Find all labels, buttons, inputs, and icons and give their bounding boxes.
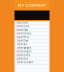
- staticText: Item nine: [16, 54, 30, 57]
- staticText: Item two: [16, 28, 28, 32]
- staticText: Item ten: [16, 57, 28, 60]
- staticText: Item five: [16, 39, 28, 42]
- staticText: Section: [16, 21, 28, 24]
- staticText: Item one: [16, 25, 29, 28]
- staticText: Item seven: [16, 46, 31, 50]
- staticText: Item three: [16, 32, 31, 35]
- staticText: Item six: [16, 43, 26, 46]
- button[interactable]: Item six: [14, 43, 49, 46]
- button[interactable]: Item four: [14, 36, 49, 39]
- button[interactable]: Item one: [14, 25, 49, 28]
- button[interactable]: Item eight: [14, 50, 49, 54]
- button[interactable]: Item seven: [14, 46, 49, 50]
- button[interactable]: Item three: [14, 32, 49, 36]
- staticText: MY COMPANY: [17, 3, 46, 8]
- button[interactable]: Section: [14, 21, 49, 25]
- button[interactable]: Item ten: [14, 57, 49, 61]
- staticText: Item four: [16, 36, 29, 39]
- button[interactable]: Item five: [14, 39, 49, 43]
- button[interactable]: Item eleven: [14, 61, 49, 64]
- staticText: Item eight: [16, 50, 31, 53]
- button[interactable]: Item nine: [14, 54, 49, 57]
- staticText: Item eleven: [16, 61, 33, 64]
- button[interactable]: Item two: [14, 28, 49, 32]
